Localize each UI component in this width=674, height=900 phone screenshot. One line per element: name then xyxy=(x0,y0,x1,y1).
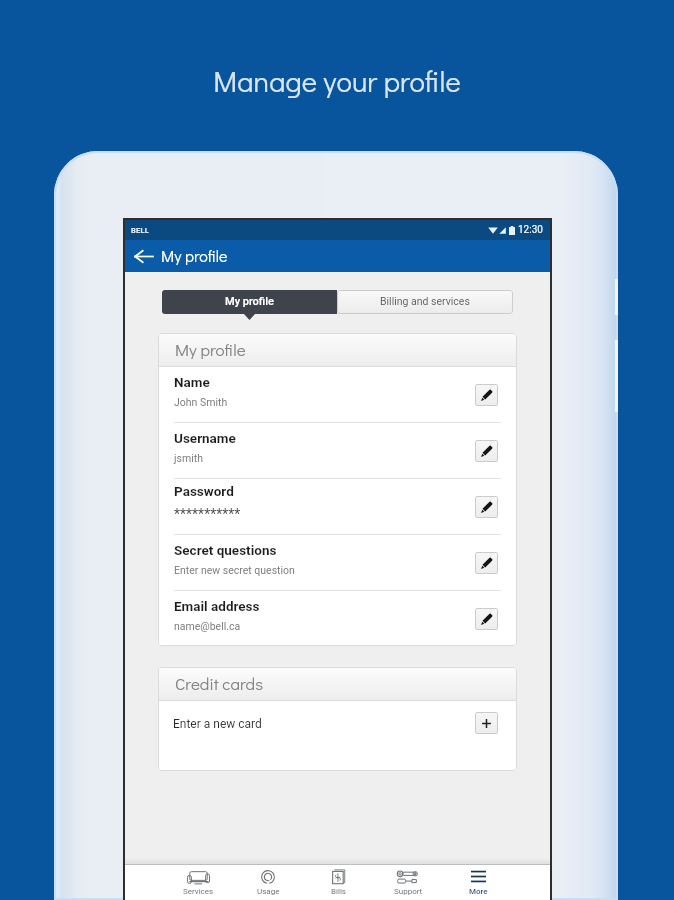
button[interactable]: Secret questions xyxy=(158,535,517,590)
button[interactable]: Edit Secret questions xyxy=(475,552,498,574)
staticText: Email address xyxy=(174,598,260,614)
staticText: Support xyxy=(394,887,423,896)
staticText: Name xyxy=(174,374,210,390)
button[interactable]: Name xyxy=(158,367,517,422)
button[interactable]: Support xyxy=(373,865,443,900)
staticText: name@bell.ca xyxy=(174,620,241,632)
button[interactable]: Edit Email address xyxy=(475,608,498,630)
button[interactable]: Edit Username xyxy=(475,440,498,462)
staticText: More xyxy=(469,887,488,896)
button[interactable]: Services xyxy=(163,865,233,900)
staticText: Services xyxy=(183,887,214,896)
staticText: Username xyxy=(174,430,236,446)
staticText: 12:30 xyxy=(518,224,543,236)
staticText: John Smith xyxy=(174,396,228,408)
staticText: My profile xyxy=(175,338,246,360)
button[interactable]: My profile xyxy=(162,290,337,314)
staticText: jsmith xyxy=(174,452,203,464)
button[interactable]: Edit Password xyxy=(475,496,498,518)
button[interactable]: Username xyxy=(158,423,517,478)
button[interactable]: Back xyxy=(130,243,156,269)
button[interactable]: Password xyxy=(158,479,517,534)
button[interactable]: Bills xyxy=(303,865,373,900)
staticText: Bills xyxy=(331,887,346,896)
button[interactable]: Billing and services xyxy=(337,290,513,314)
button[interactable]: Edit Name xyxy=(475,384,498,406)
staticText: Credit cards xyxy=(175,672,264,694)
staticText: Usage xyxy=(257,887,280,896)
button[interactable]: More xyxy=(443,865,513,900)
staticText: Manage your profile xyxy=(0,62,674,100)
staticText: Enter a new card xyxy=(173,717,475,731)
staticText: Enter new secret question xyxy=(174,564,295,576)
staticText: My profile xyxy=(161,245,228,266)
staticText: Secret questions xyxy=(174,542,277,558)
button[interactable]: Add card xyxy=(475,712,498,734)
button[interactable]: Usage xyxy=(233,865,303,900)
staticText: *********** xyxy=(174,506,241,522)
staticText: Password xyxy=(174,483,234,499)
button[interactable]: Email address xyxy=(158,591,517,646)
button[interactable]: Enter a new card xyxy=(158,701,517,771)
staticText: Billing and services xyxy=(380,295,470,307)
staticText: My profile xyxy=(225,295,274,308)
staticText: BELL xyxy=(131,226,149,235)
